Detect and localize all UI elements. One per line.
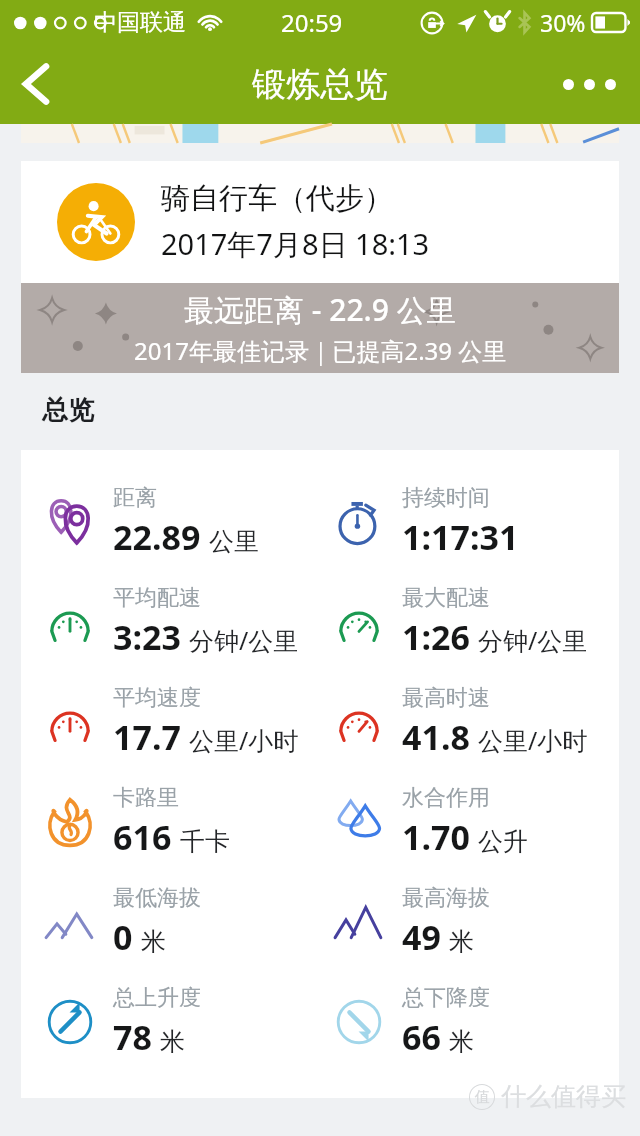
staticText: 最低海拔 xyxy=(113,884,201,912)
button[interactable]: 最高时速 xyxy=(320,672,619,772)
staticText: 1:17:31 xyxy=(402,514,519,560)
button[interactable]: Back xyxy=(0,48,72,120)
button[interactable]: 距离 xyxy=(21,472,320,572)
button[interactable]: More options xyxy=(528,56,616,112)
staticText: 持续时间 xyxy=(402,484,490,512)
staticText: 平均配速 xyxy=(113,584,201,612)
button[interactable]: 水合作用 xyxy=(320,772,619,872)
button[interactable]: 平均速度 xyxy=(21,672,320,772)
staticText: 中国联通 xyxy=(94,8,186,37)
staticText: 平均速度 xyxy=(113,684,201,712)
staticText: 公里 xyxy=(209,526,259,557)
staticText: 分钟/公里 xyxy=(189,623,299,657)
button[interactable]: 最大配速 xyxy=(320,572,619,672)
staticText: 千卡 xyxy=(180,826,230,857)
staticText: 1:26 xyxy=(402,614,470,660)
staticText: 17.7 xyxy=(113,714,181,760)
staticText: 公升 xyxy=(478,826,528,857)
staticText: 3:23 xyxy=(113,614,181,660)
staticText: 值 xyxy=(475,1088,490,1107)
staticText: 骑自行车（代步） xyxy=(161,180,393,217)
staticText: 30% xyxy=(540,7,586,38)
button[interactable]: 卡路里 xyxy=(21,772,320,872)
staticText: 49 xyxy=(402,914,441,960)
staticText: 2017年7月8日 18:13 xyxy=(161,224,430,264)
staticText: 什么值得买 xyxy=(501,1081,626,1112)
staticText: 公里/小时 xyxy=(478,723,588,757)
button[interactable]: 骑自行车（代步） xyxy=(21,161,619,283)
staticText: 616 xyxy=(113,814,172,860)
staticText: 米 xyxy=(160,1026,185,1057)
staticText: 41.8 xyxy=(402,714,470,760)
staticText: 总览 xyxy=(42,394,94,427)
staticText: 78 xyxy=(113,1014,152,1060)
staticText: 分钟/公里 xyxy=(478,623,588,657)
staticText: 最大配速 xyxy=(402,584,490,612)
staticText: 米 xyxy=(141,926,166,957)
staticText: 最高海拔 xyxy=(402,884,490,912)
staticText: 2017年最佳记录｜已提高2.39 公里 xyxy=(134,334,507,367)
button[interactable]: 最高海拔 xyxy=(320,872,619,972)
button[interactable]: 持续时间 xyxy=(320,472,619,572)
button[interactable]: 总下降度 xyxy=(320,972,619,1072)
button[interactable]: Route map xyxy=(21,124,619,143)
staticText: 最远距离 - 22.9 公里 xyxy=(184,289,457,330)
button[interactable]: 总上升度 xyxy=(21,972,320,1072)
staticText: 总下降度 xyxy=(402,984,490,1012)
staticText: 20:59 xyxy=(281,6,343,39)
button[interactable]: 最远距离 - 22.9 公里 xyxy=(21,283,619,373)
staticText: 总上升度 xyxy=(113,984,201,1012)
staticText: 距离 xyxy=(113,484,157,512)
button[interactable]: 最低海拔 xyxy=(21,872,320,972)
staticText: 1.70 xyxy=(402,814,470,860)
staticText: 公里/小时 xyxy=(189,723,299,757)
staticText: 0 xyxy=(113,914,133,960)
staticText: 66 xyxy=(402,1014,441,1060)
staticText: 卡路里 xyxy=(113,784,179,812)
staticText: 22.89 xyxy=(113,514,201,560)
staticText: 米 xyxy=(449,926,474,957)
staticText: 水合作用 xyxy=(402,784,490,812)
staticText: 锻炼总览 xyxy=(252,63,388,106)
button[interactable]: 平均配速 xyxy=(21,572,320,672)
staticText: 最高时速 xyxy=(402,684,490,712)
staticText: 米 xyxy=(449,1026,474,1057)
